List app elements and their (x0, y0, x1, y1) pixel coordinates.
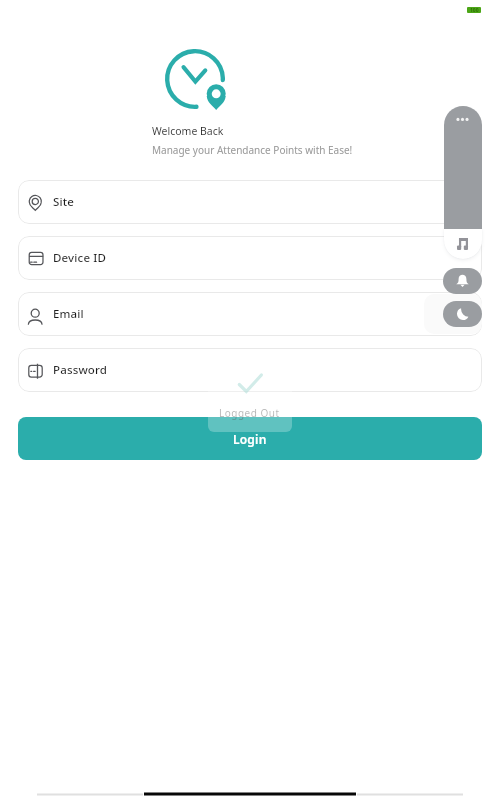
staticText: Device ID (53, 250, 107, 266)
button[interactable]: Site (18, 180, 482, 224)
button[interactable]: Music (444, 229, 482, 259)
staticText: Password (53, 362, 108, 378)
button[interactable]: Dark mode (443, 301, 482, 327)
button[interactable]: Notifications (443, 268, 482, 294)
button[interactable]: Login (18, 417, 482, 460)
staticText: Email (53, 306, 84, 322)
staticText: Welcome Back (152, 124, 224, 138)
staticText: Logged Out (219, 406, 280, 420)
staticText: Site (53, 194, 75, 210)
staticText: Login (233, 431, 267, 447)
button[interactable]: Password (18, 348, 482, 392)
staticText: 100 (470, 7, 479, 13)
button[interactable]: More options (444, 106, 482, 230)
button[interactable]: Device ID (18, 236, 482, 280)
button[interactable]: Email (18, 292, 482, 336)
staticText: Manage your Attendance Points with Ease! (152, 143, 353, 157)
